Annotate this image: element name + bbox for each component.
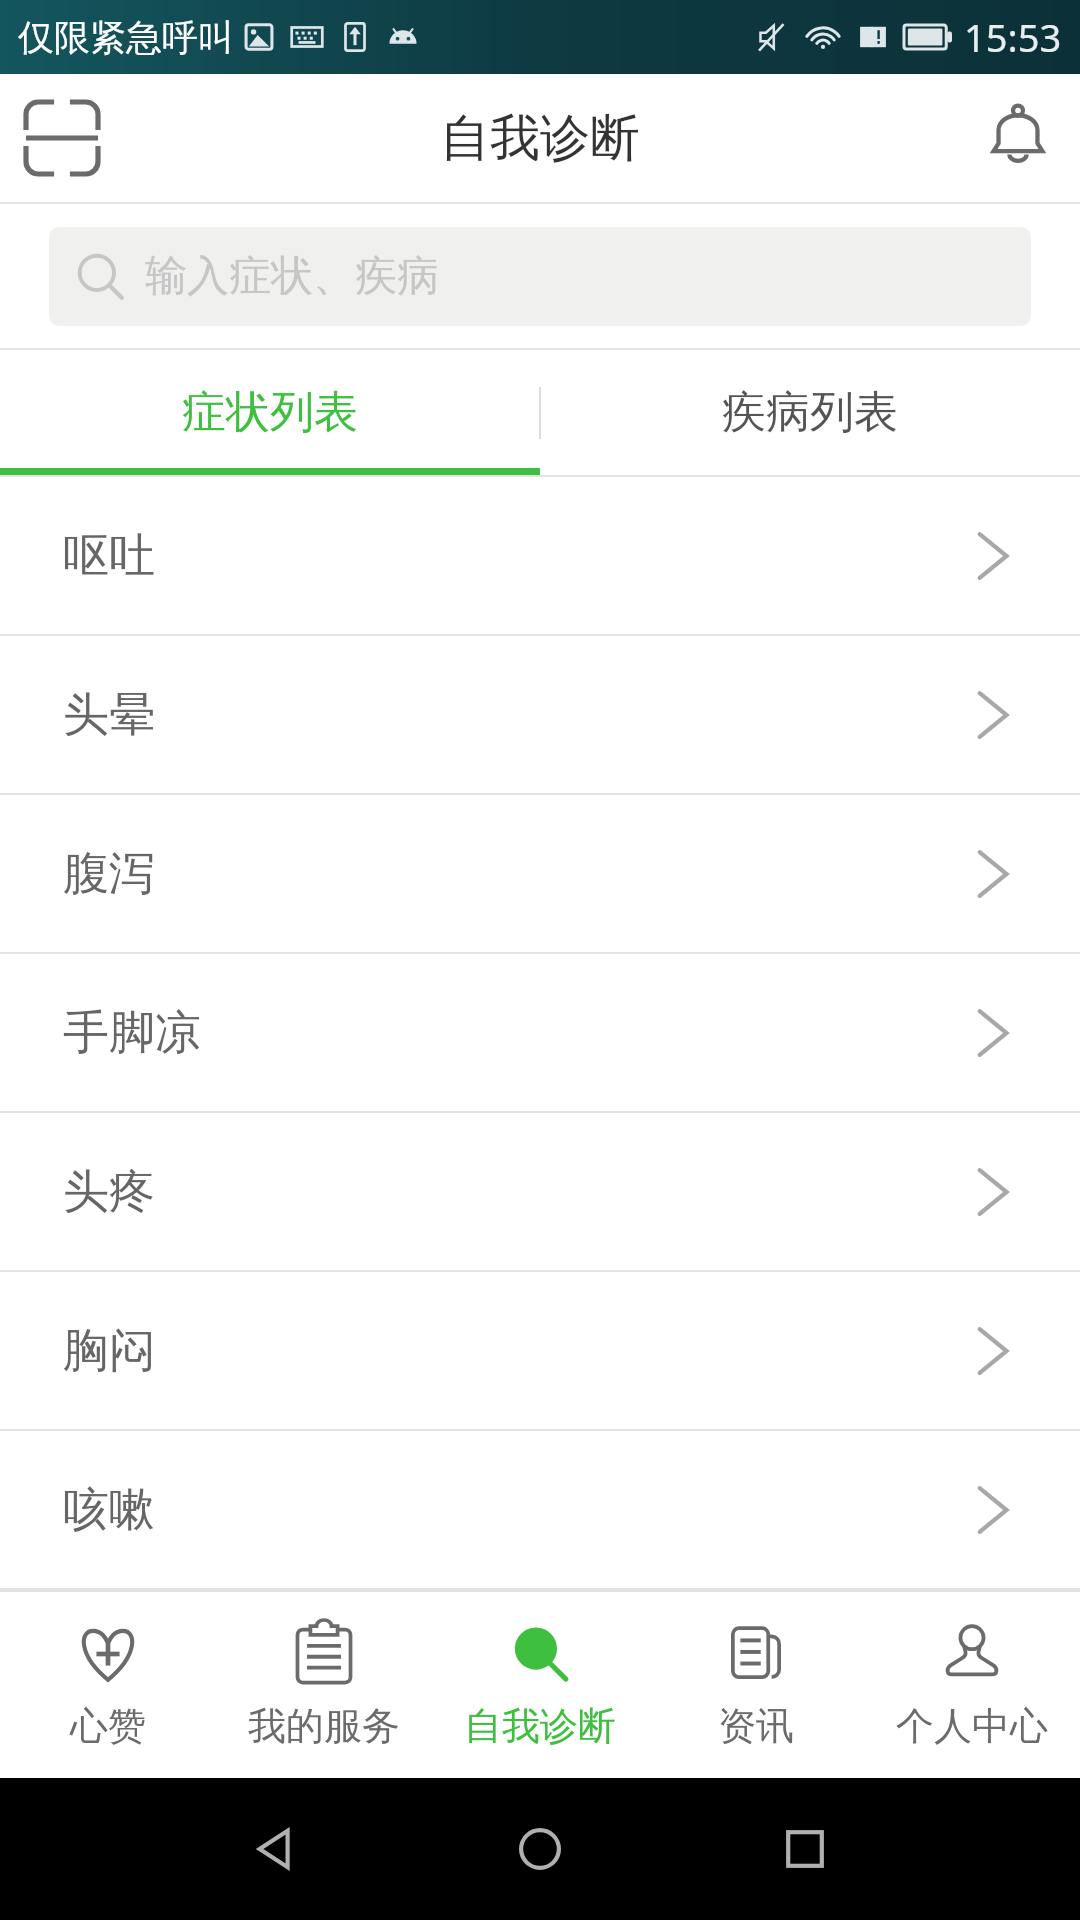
staticText: 腹泻	[63, 845, 155, 903]
button[interactable]: 自我诊断	[432, 1592, 648, 1778]
staticText: 15:53	[964, 11, 1062, 63]
button[interactable]: 主页	[505, 1814, 575, 1884]
staticText: 资讯	[718, 1702, 794, 1750]
staticText: 胸闷	[63, 1322, 155, 1380]
button[interactable]: 通知	[976, 96, 1060, 180]
button[interactable]: 胸闷	[0, 1272, 1080, 1429]
button[interactable]: 头疼	[0, 1113, 1080, 1270]
button[interactable]: 头晕	[0, 636, 1080, 793]
button[interactable]: 个人中心	[864, 1592, 1080, 1778]
staticText: 仅限紧急呼叫	[18, 15, 234, 60]
button[interactable]: 症状列表	[0, 350, 540, 475]
staticText: 疾病列表	[722, 385, 898, 440]
staticText: 自我诊断	[440, 107, 640, 170]
button[interactable]: 心赞	[0, 1592, 216, 1778]
staticText: 输入症状、疾病	[145, 250, 439, 303]
staticText: 自我诊断	[464, 1702, 616, 1750]
button[interactable]: 返回	[240, 1814, 310, 1884]
staticText: 症状列表	[182, 385, 358, 440]
button[interactable]: 咳嗽	[0, 1431, 1080, 1588]
staticText: 咳嗽	[63, 1481, 155, 1539]
button[interactable]: 输入症状、疾病	[49, 227, 1031, 326]
staticText: 我的服务	[248, 1702, 400, 1750]
button[interactable]: 疾病列表	[540, 350, 1080, 475]
staticText: 手脚凉	[63, 1004, 201, 1062]
button[interactable]: 呕吐	[0, 477, 1080, 634]
button[interactable]: 手脚凉	[0, 954, 1080, 1111]
button[interactable]: 扫一扫	[20, 96, 104, 180]
button[interactable]: 腹泻	[0, 795, 1080, 952]
staticText: 心赞	[70, 1702, 146, 1750]
staticText: 个人中心	[896, 1702, 1048, 1750]
button[interactable]: 最近任务	[770, 1814, 840, 1884]
button[interactable]: 资讯	[648, 1592, 864, 1778]
button[interactable]: 我的服务	[216, 1592, 432, 1778]
staticText: 呕吐	[63, 527, 155, 585]
staticText: 头晕	[63, 686, 155, 744]
staticText: 头疼	[63, 1163, 155, 1221]
